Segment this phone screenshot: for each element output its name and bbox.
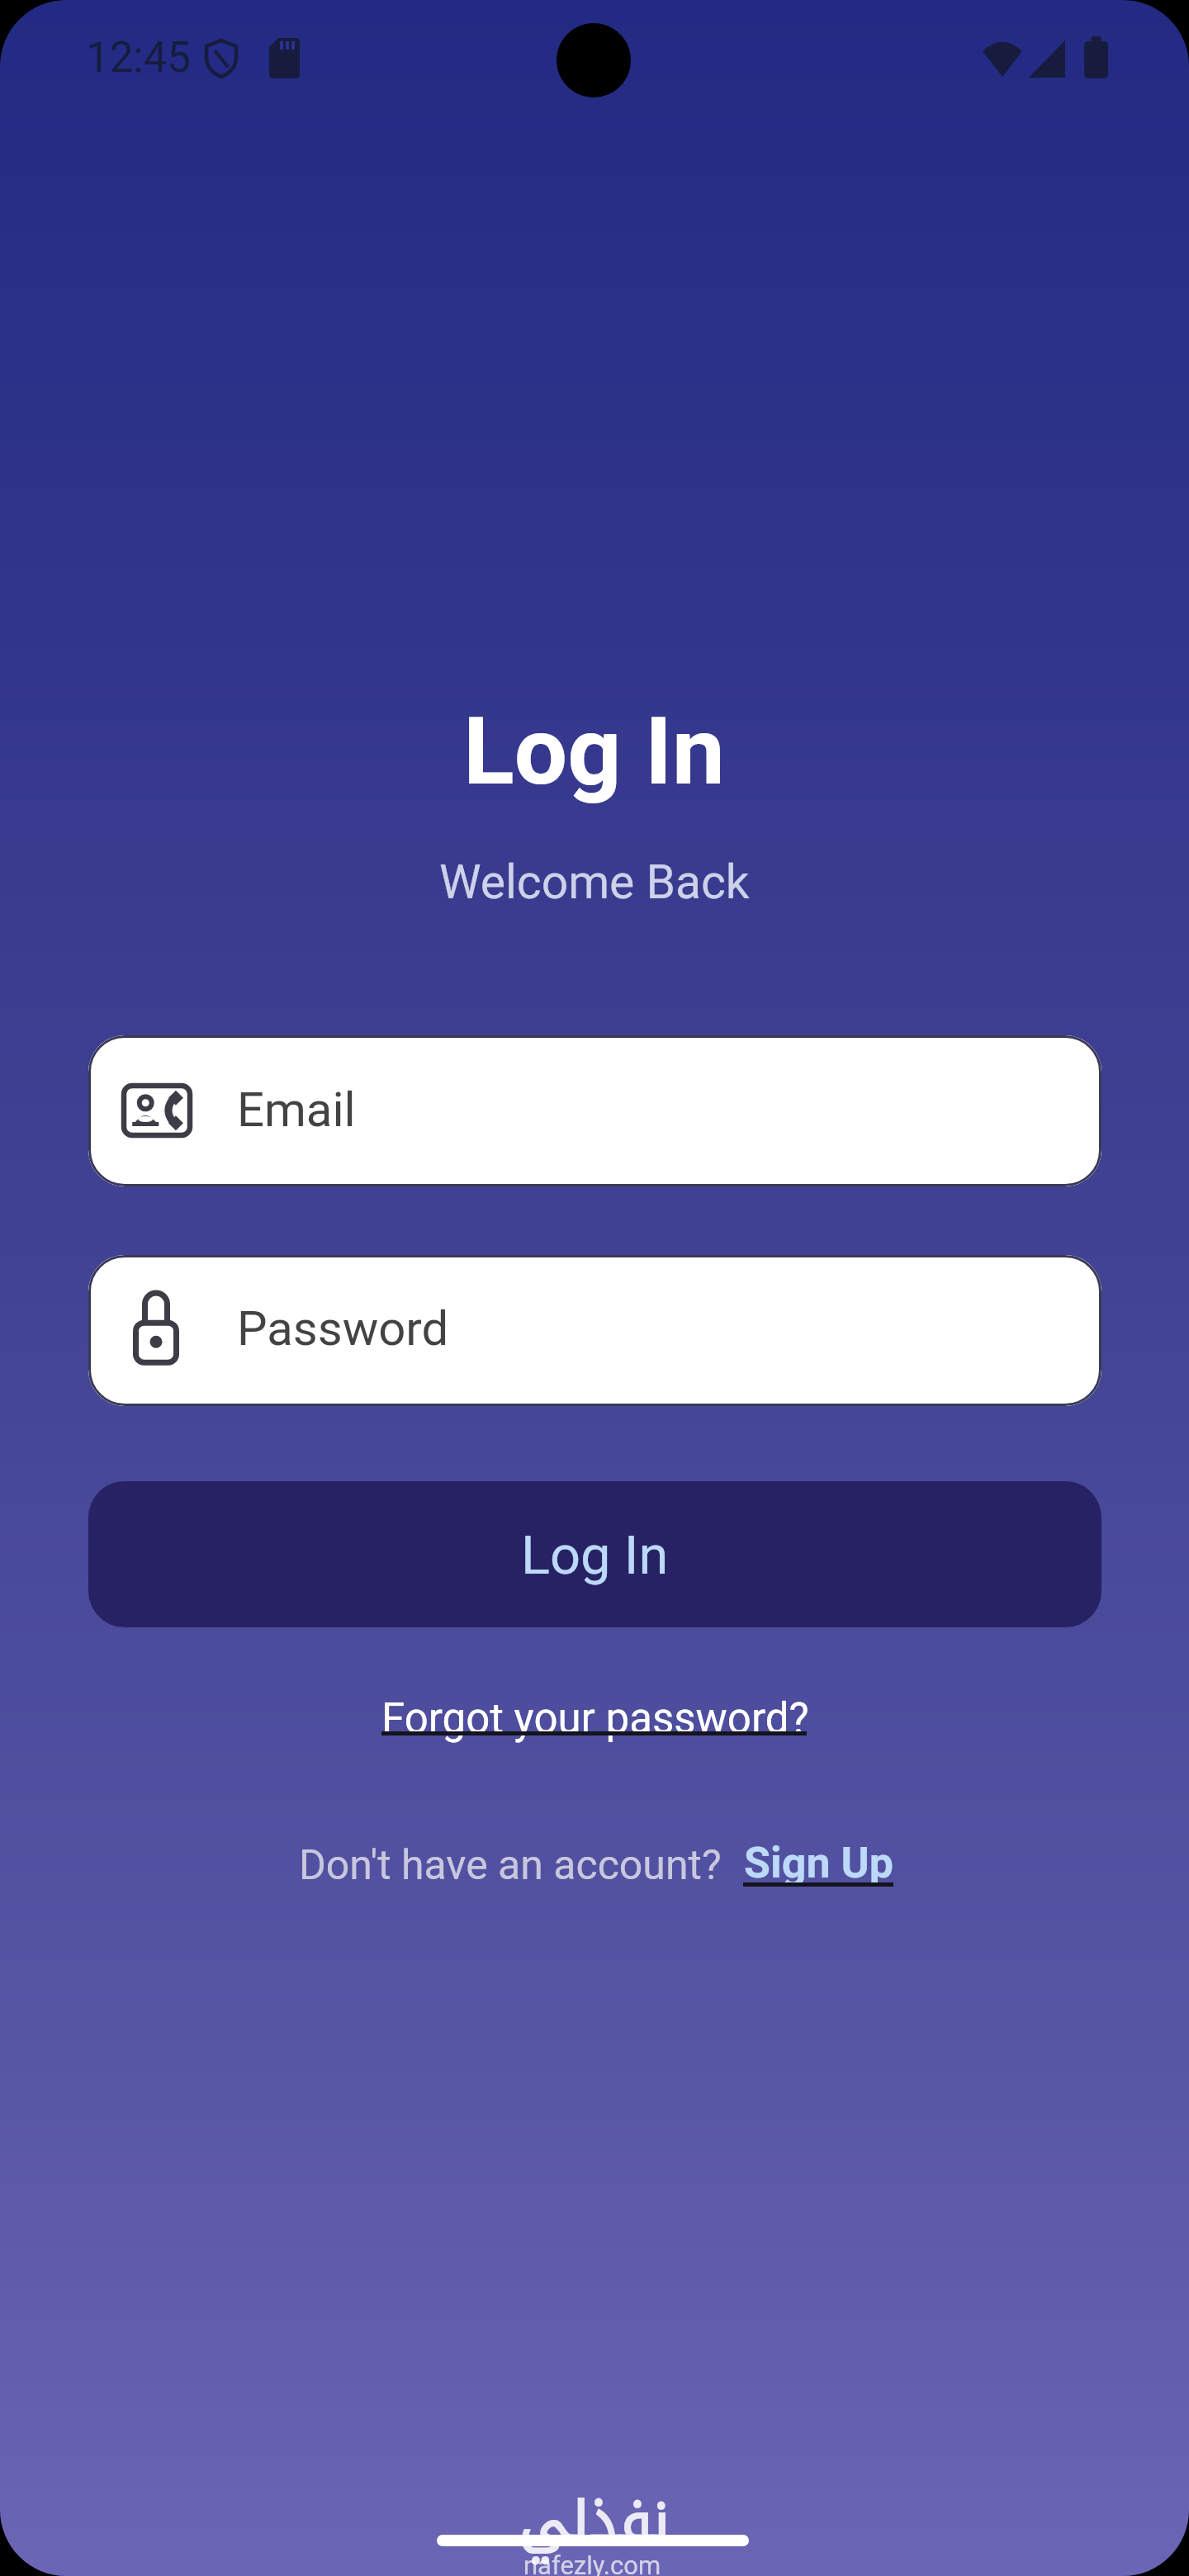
staticText: nafezly.com	[523, 2550, 661, 2576]
button[interactable]: Email	[88, 1035, 1101, 1186]
staticText: Password	[237, 1300, 449, 1357]
button[interactable]: Log In	[88, 1481, 1101, 1627]
staticText: Email	[237, 1082, 356, 1138]
staticText: Sign Up	[744, 1838, 894, 1888]
staticText: 12:45	[86, 33, 192, 83]
button[interactable]: Sign Up	[740, 1835, 890, 1886]
staticText: Log In	[463, 696, 725, 807]
button[interactable]: Password	[88, 1255, 1101, 1406]
staticText: Forgot your password?	[381, 1694, 809, 1744]
staticText: نفذلي	[519, 2469, 670, 2573]
button[interactable]: Forgot your password?	[363, 1686, 791, 1735]
staticText: Don't have an account?	[299, 1841, 722, 1890]
staticText: Welcome Back	[439, 855, 750, 910]
staticText: Log In	[521, 1524, 669, 1587]
